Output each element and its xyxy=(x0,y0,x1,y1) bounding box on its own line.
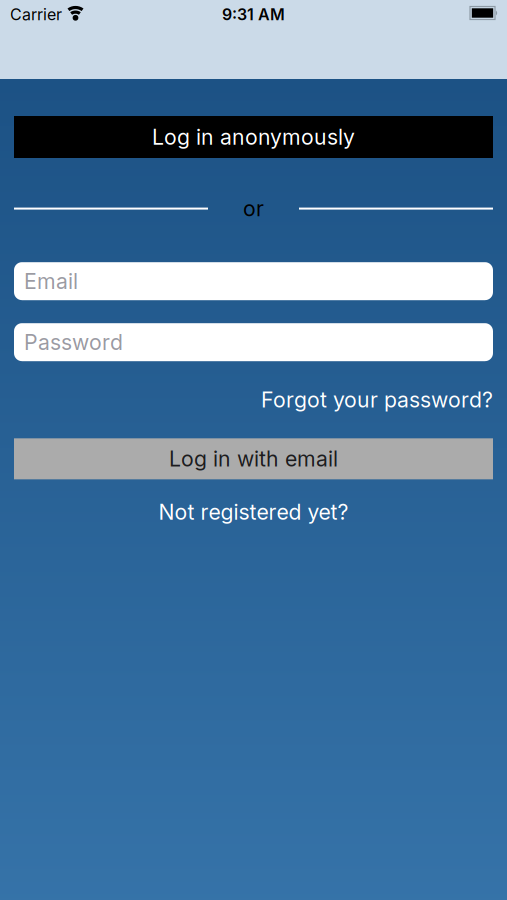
staticText: Password xyxy=(24,330,123,355)
staticText: Carrier xyxy=(10,5,62,24)
staticText: or xyxy=(243,196,264,221)
button[interactable]: Password xyxy=(14,323,493,361)
staticText: Log in anonymously xyxy=(152,124,355,150)
staticText: Log in with email xyxy=(169,446,338,471)
staticText: Email xyxy=(24,269,78,294)
button[interactable]: Email xyxy=(14,262,493,300)
staticText: Forgot your password? xyxy=(261,387,493,412)
button[interactable]: Log in with email xyxy=(14,438,493,479)
staticText: Not registered yet? xyxy=(158,499,348,524)
staticText: 9:31 AM xyxy=(222,5,285,24)
button[interactable]: Forgot your password? xyxy=(261,387,493,412)
button[interactable]: Log in anonymously xyxy=(14,116,493,158)
button[interactable]: Not registered yet? xyxy=(158,499,348,524)
